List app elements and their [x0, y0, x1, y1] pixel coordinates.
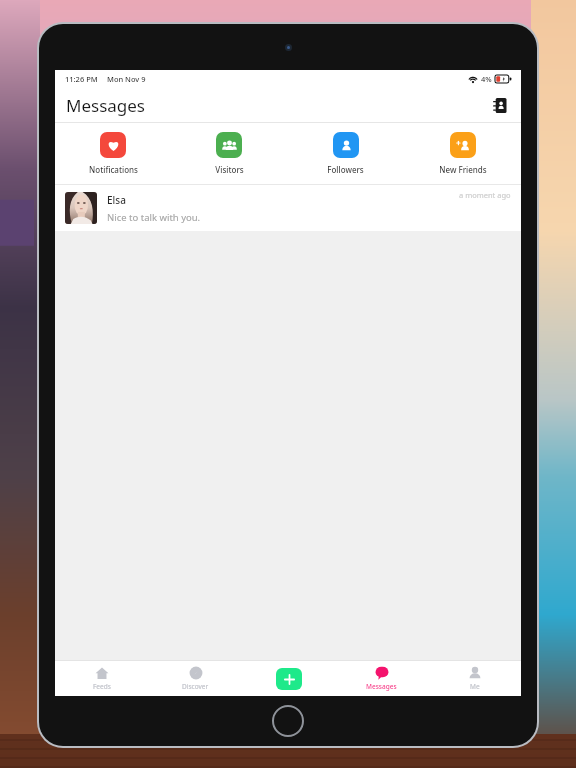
staticText: Messages — [66, 94, 146, 117]
button[interactable]: Notifications — [55, 123, 171, 184]
staticText: Mon Nov 9 — [107, 74, 146, 84]
button[interactable]: Discover — [149, 661, 242, 696]
button[interactable]: Messages — [335, 661, 428, 696]
staticText: Notifications — [89, 164, 138, 175]
button[interactable]: Feeds — [55, 661, 149, 696]
staticText: 11:26 PM — [65, 74, 98, 84]
staticText: New Friends — [439, 164, 487, 175]
staticText: 4% — [481, 74, 492, 84]
staticText: Discover — [182, 682, 209, 691]
button[interactable]: New Friends — [404, 123, 521, 184]
button[interactable]: Me — [428, 661, 521, 696]
button[interactable]: Contacts — [487, 92, 513, 118]
staticText: Me — [470, 682, 480, 691]
staticText: Messages — [366, 682, 397, 691]
staticText: Visitors — [215, 164, 244, 175]
button[interactable]: Elsa — [55, 185, 521, 231]
button[interactable]: Create post — [242, 661, 335, 696]
staticText: a moment ago — [459, 190, 511, 200]
staticText: Nice to talk with you. — [107, 211, 201, 224]
staticText: Feeds — [93, 682, 111, 691]
button[interactable]: Visitors — [171, 123, 287, 184]
staticText: Followers — [327, 164, 364, 175]
staticText: Elsa — [107, 193, 126, 207]
button[interactable]: Followers — [287, 123, 404, 184]
